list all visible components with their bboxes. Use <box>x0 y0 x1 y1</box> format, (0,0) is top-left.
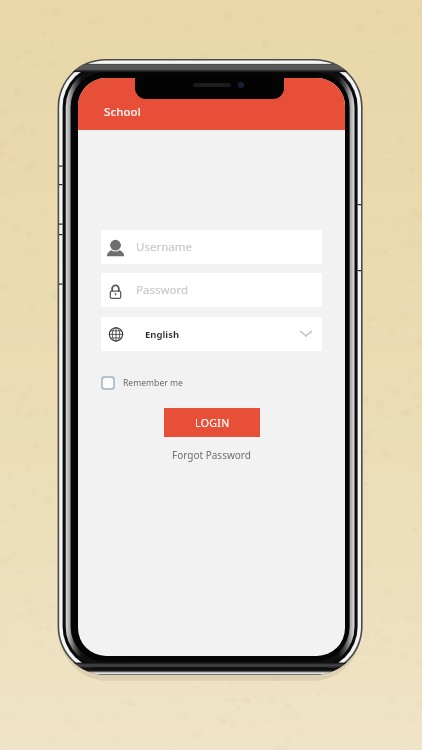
staticText: LOGIN <box>195 416 230 430</box>
button[interactable]: Username <box>101 230 322 264</box>
staticText: Username <box>136 239 192 255</box>
button[interactable]: English <box>101 317 322 351</box>
button[interactable]: Password <box>101 273 322 307</box>
button[interactable]: Remember me <box>101 376 183 390</box>
staticText: Password <box>136 282 189 298</box>
button[interactable]: Forgot Password <box>172 448 251 462</box>
staticText: School <box>104 104 141 120</box>
button[interactable]: LOGIN <box>164 408 260 437</box>
staticText: English <box>145 328 180 341</box>
staticText: Remember me <box>123 377 183 389</box>
other: Expand language list <box>298 326 314 342</box>
